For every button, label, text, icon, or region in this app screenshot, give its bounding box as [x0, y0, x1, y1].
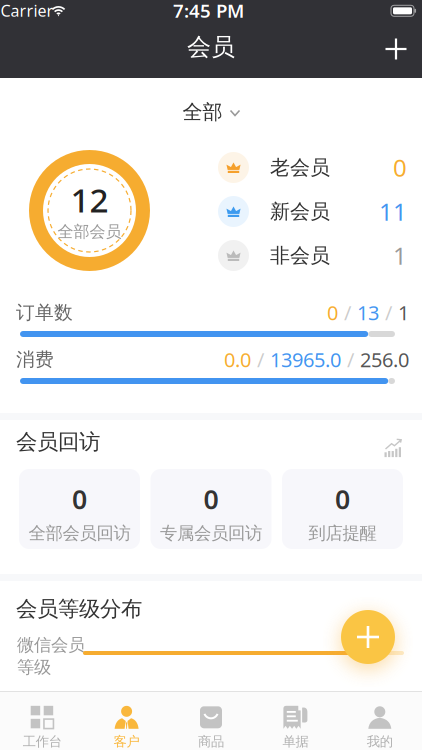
staticText: 0: [72, 481, 87, 516]
button[interactable]: Add: [375, 28, 416, 69]
button[interactable]: Chart: [384, 437, 402, 455]
staticText: 全部会员: [57, 222, 121, 241]
staticText: 单据: [282, 733, 308, 750]
button[interactable]: 0: [282, 469, 403, 549]
staticText: 我的: [367, 733, 393, 750]
staticText: /: [344, 299, 351, 326]
staticText: 1: [393, 240, 407, 271]
staticText: 12: [70, 177, 108, 222]
staticText: 专属会员回访: [160, 523, 262, 544]
staticText: 非会员: [270, 243, 330, 268]
staticText: 7:45 PM: [173, 0, 244, 23]
staticText: 13: [357, 299, 379, 326]
staticText: 全部会员回访: [28, 523, 130, 544]
staticText: 新会员: [270, 199, 330, 224]
button[interactable]: Add level: [341, 610, 395, 664]
button[interactable]: 客户: [84, 692, 169, 750]
button[interactable]: 0: [150, 469, 271, 549]
staticText: 到店提醒: [308, 523, 376, 544]
staticText: /: [385, 299, 392, 326]
button[interactable]: 全部: [182, 100, 239, 124]
button[interactable]: 单据: [253, 692, 338, 750]
staticText: 0: [335, 481, 350, 516]
staticText: 微信会员: [17, 634, 85, 655]
staticText: 256.0: [360, 346, 409, 373]
staticText: 0: [203, 481, 218, 516]
button[interactable]: 工作台: [0, 692, 84, 750]
staticText: 工作台: [23, 733, 62, 750]
staticText: 会员回访: [16, 429, 100, 455]
staticText: 11: [379, 196, 407, 227]
staticText: 13965.0: [270, 346, 341, 373]
staticText: 商品: [198, 733, 224, 750]
staticText: /: [347, 346, 354, 373]
staticText: 全部: [182, 100, 222, 124]
button[interactable]: 商品: [169, 692, 253, 750]
staticText: Carrier: [0, 0, 53, 21]
staticText: 订单数: [16, 301, 73, 324]
staticText: 消费: [16, 348, 54, 371]
button[interactable]: 我的: [338, 692, 422, 750]
staticText: 客户: [114, 733, 140, 750]
staticText: 等级: [17, 656, 51, 678]
staticText: 1: [398, 299, 409, 326]
staticText: 0: [393, 152, 407, 183]
staticText: /: [257, 346, 264, 373]
staticText: 0: [327, 299, 338, 326]
staticText: 会员: [187, 32, 235, 62]
staticText: 会员等级分布: [16, 596, 142, 622]
staticText: 0.0: [224, 346, 251, 373]
button[interactable]: 0: [19, 469, 140, 549]
staticText: 老会员: [270, 155, 330, 180]
